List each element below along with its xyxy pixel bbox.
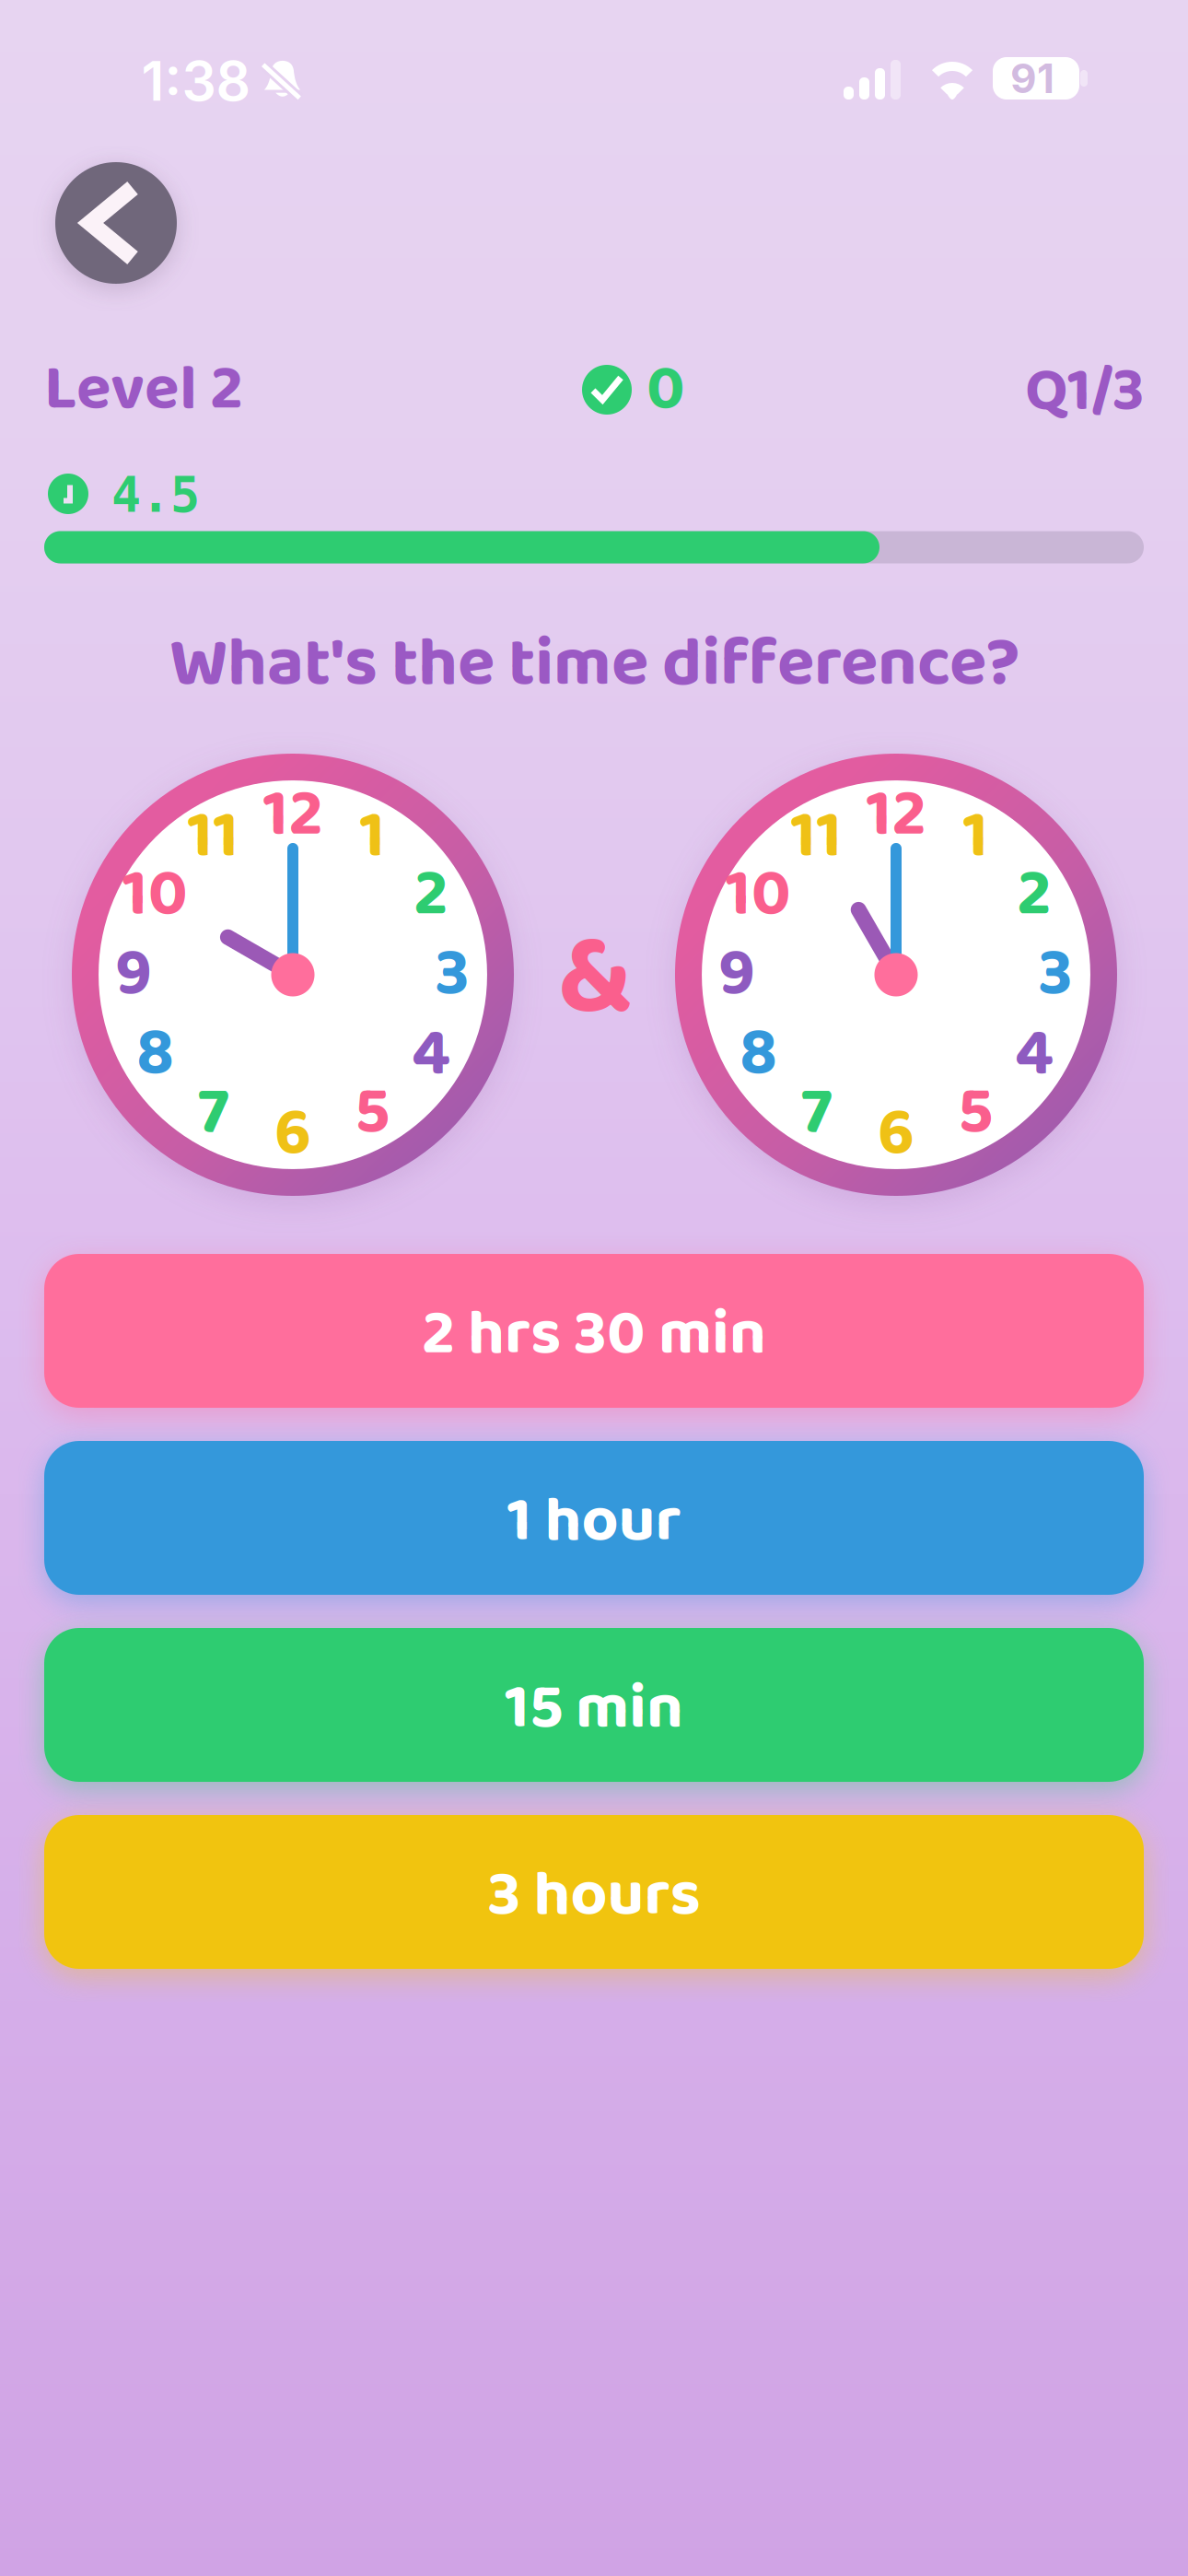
staticText: 5 bbox=[958, 1060, 993, 1166]
staticText: 3 bbox=[435, 922, 469, 1028]
staticText: 3 hours bbox=[488, 1844, 700, 1947]
button[interactable]: 1 hour bbox=[44, 1441, 1144, 1595]
staticText: 8 bbox=[740, 1002, 776, 1107]
staticText: What's the time difference? bbox=[169, 609, 1020, 719]
staticText: 0 bbox=[646, 339, 685, 441]
staticText: 7 bbox=[801, 1060, 832, 1166]
button[interactable]: 2 hrs 30 min bbox=[44, 1254, 1144, 1408]
button[interactable]: Back bbox=[55, 162, 177, 284]
staticText: 8 bbox=[136, 1002, 173, 1107]
staticText: 1:38 bbox=[141, 48, 251, 114]
staticText: & bbox=[558, 888, 632, 1069]
staticText: 7 bbox=[198, 1060, 229, 1166]
staticText: 10 bbox=[122, 842, 188, 948]
staticText: 10 bbox=[725, 842, 791, 948]
staticText: 1 bbox=[963, 784, 989, 890]
staticText: 9 bbox=[718, 922, 755, 1028]
staticText: 6 bbox=[878, 1081, 914, 1187]
staticText: 2 hrs 30 min bbox=[422, 1283, 766, 1386]
staticText: 2 bbox=[414, 842, 448, 948]
staticText: 11 bbox=[187, 784, 239, 890]
staticText: 4 bbox=[412, 1002, 450, 1107]
staticText: 6 bbox=[274, 1081, 311, 1187]
staticText: 3 bbox=[1038, 922, 1072, 1028]
staticText: Level 2 bbox=[44, 339, 243, 441]
button[interactable]: 15 min bbox=[44, 1628, 1144, 1782]
staticText: 15 min bbox=[505, 1657, 683, 1760]
staticText: 4 bbox=[1015, 1002, 1053, 1107]
staticText: 9 bbox=[115, 922, 152, 1028]
staticText: 12 bbox=[866, 762, 926, 868]
staticText: 4.5 bbox=[111, 466, 200, 523]
staticText: 5 bbox=[355, 1060, 390, 1166]
staticText: 1 bbox=[360, 784, 385, 890]
staticText: 91 bbox=[1010, 54, 1054, 103]
button[interactable]: 3 hours bbox=[44, 1815, 1144, 1969]
staticText: 12 bbox=[263, 762, 323, 868]
staticText: 1 hour bbox=[507, 1470, 681, 1573]
staticText: 11 bbox=[791, 784, 842, 890]
staticText: 2 bbox=[1017, 842, 1051, 948]
staticText: Q1/3 bbox=[1025, 342, 1144, 441]
